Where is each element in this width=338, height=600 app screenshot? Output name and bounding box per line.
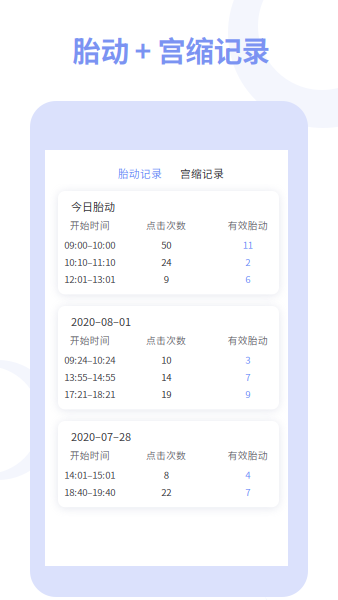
staticText: 胎动 + 宫缩记录	[72, 28, 269, 69]
staticText: 点击次数	[146, 448, 186, 462]
button[interactable]: 宫缩记录	[180, 165, 224, 181]
staticText: 有效胎动	[228, 218, 268, 232]
staticText: 09:00–10:00	[64, 237, 115, 251]
staticText: 9	[245, 387, 250, 401]
staticText: 2020–07–28	[71, 428, 131, 444]
staticText: 8	[164, 467, 169, 481]
staticText: 开始时间	[70, 218, 110, 232]
staticText: 9	[164, 272, 169, 286]
staticText: 13:55–14:55	[64, 370, 115, 384]
staticText: 开始时间	[70, 448, 110, 462]
staticText: 宫缩记录	[180, 165, 224, 181]
staticText: 24	[161, 255, 171, 269]
staticText: 3	[245, 352, 250, 366]
staticText: 胎动记录	[118, 165, 162, 181]
staticText: 7	[245, 370, 250, 384]
staticText: 点击次数	[146, 218, 186, 232]
staticText: 开始时间	[70, 333, 110, 347]
staticText: 有效胎动	[228, 448, 268, 462]
staticText: 点击次数	[146, 333, 186, 347]
staticText: 6	[245, 272, 250, 286]
staticText: 14	[161, 370, 171, 384]
staticText: 2	[245, 255, 250, 269]
button[interactable]: 胎动记录	[118, 165, 162, 181]
staticText: 09:24–10:24	[64, 352, 115, 366]
staticText: 19	[161, 387, 171, 401]
staticText: 10:10–11:10	[64, 255, 115, 269]
staticText: 7	[245, 485, 250, 499]
staticText: 18:40–19:40	[64, 485, 115, 499]
staticText: 10	[161, 352, 171, 366]
staticText: 12:01–13:01	[64, 272, 115, 286]
staticText: 2020–08–01	[71, 313, 131, 329]
staticText: 17:21–18:21	[64, 387, 115, 401]
staticText: 有效胎动	[228, 333, 268, 347]
staticText: 今日胎动	[71, 198, 115, 214]
staticText: 4	[245, 467, 250, 481]
staticText: 50	[161, 237, 171, 251]
staticText: 14:01–15:01	[64, 467, 115, 481]
staticText: 22	[161, 485, 171, 499]
staticText: 11	[243, 237, 253, 251]
